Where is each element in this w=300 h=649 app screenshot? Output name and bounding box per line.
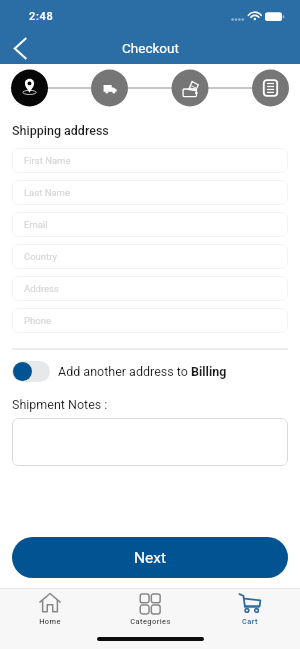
button[interactable]: Country bbox=[12, 244, 288, 269]
staticText: Checkout bbox=[122, 40, 179, 56]
staticText: Address bbox=[24, 283, 59, 294]
button[interactable]: Last Name bbox=[12, 180, 288, 205]
button[interactable]: Address bbox=[12, 276, 288, 301]
staticText: Add another address to bbox=[58, 364, 191, 379]
button[interactable]: Home bbox=[0, 588, 100, 649]
staticText: 2:48 bbox=[29, 10, 54, 23]
staticText: First Name bbox=[24, 155, 71, 166]
staticText: Shipping address bbox=[12, 123, 109, 138]
button[interactable] bbox=[12, 418, 288, 466]
staticText: Billing bbox=[191, 364, 227, 379]
staticText: Categories bbox=[130, 617, 171, 626]
staticText: Last Name bbox=[24, 187, 70, 198]
staticText: Country bbox=[24, 251, 57, 262]
staticText: Phone bbox=[24, 315, 51, 326]
button[interactable]: First Name bbox=[12, 148, 288, 173]
staticText: Next bbox=[134, 549, 167, 567]
button[interactable]: Add another address to bbox=[12, 361, 288, 382]
button[interactable]: Back bbox=[3, 31, 37, 65]
button[interactable]: Cart bbox=[200, 588, 300, 649]
staticText: Email bbox=[24, 219, 48, 230]
staticText: Cart bbox=[242, 617, 258, 626]
staticText: Home bbox=[39, 617, 61, 626]
button[interactable]: Categories bbox=[100, 588, 200, 649]
button[interactable]: Email bbox=[12, 212, 288, 237]
button[interactable]: Phone bbox=[12, 308, 288, 333]
button[interactable]: Next bbox=[12, 537, 288, 578]
staticText: Shipment Notes : bbox=[12, 397, 108, 412]
